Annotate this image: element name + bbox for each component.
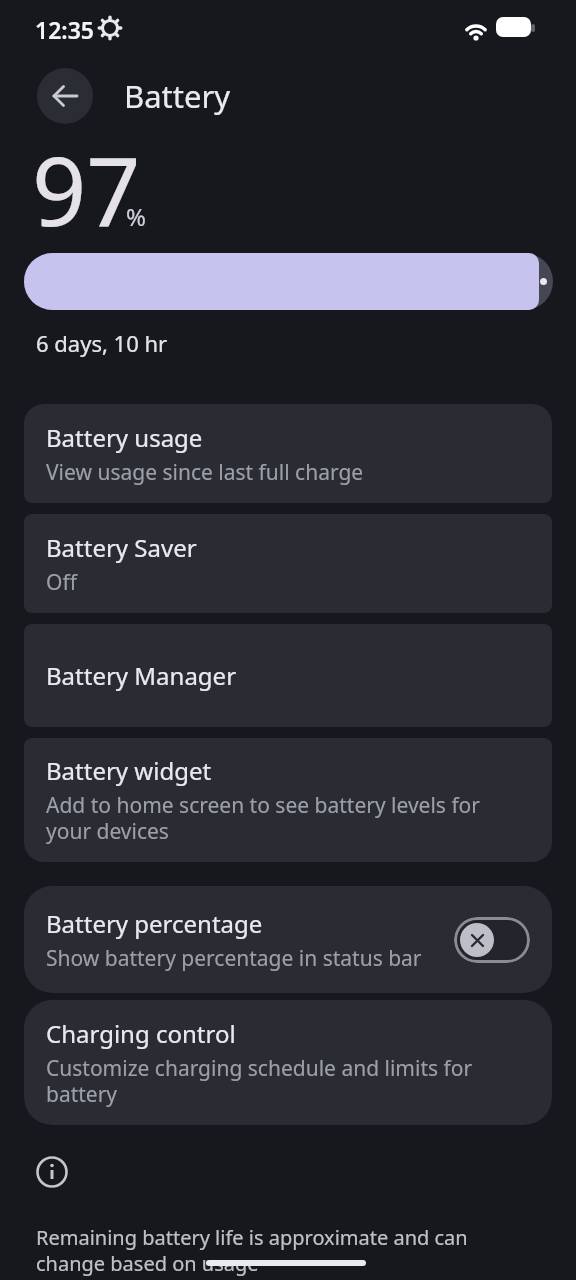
staticText: Charging control xyxy=(46,1017,236,1050)
staticText: % xyxy=(126,200,146,233)
staticText: Battery xyxy=(124,75,231,117)
button[interactable]: Battery Saver xyxy=(24,514,552,613)
staticText: change based on usage xyxy=(36,1250,259,1277)
button[interactable]: Battery usage xyxy=(24,404,552,503)
staticText: Battery Manager xyxy=(46,659,237,692)
staticText: Battery Saver xyxy=(46,531,197,564)
button[interactable] xyxy=(37,68,93,124)
staticText: 6 days, 10 hr xyxy=(36,328,168,358)
staticText: View usage since last full charge xyxy=(46,458,364,487)
button[interactable]: Battery Manager xyxy=(24,624,552,727)
staticText: Battery percentage xyxy=(46,907,263,940)
staticText: Off xyxy=(46,568,77,597)
staticText: Customize charging schedule and limits f… xyxy=(46,1054,473,1109)
staticText: 12:35 xyxy=(35,14,94,45)
staticText: 97 xyxy=(32,124,141,253)
staticText: Remaining battery life is approximate an… xyxy=(36,1224,468,1251)
button[interactable]: Battery widget xyxy=(24,738,552,862)
staticText: Add to home screen to see battery levels… xyxy=(46,791,480,846)
staticText: Show battery percentage in status bar xyxy=(46,944,422,973)
button[interactable]: Charging control xyxy=(24,1000,552,1125)
staticText: Battery usage xyxy=(46,421,203,454)
staticText: Battery widget xyxy=(46,754,212,787)
button[interactable]: Battery percentage xyxy=(24,886,552,993)
button[interactable] xyxy=(454,917,530,963)
